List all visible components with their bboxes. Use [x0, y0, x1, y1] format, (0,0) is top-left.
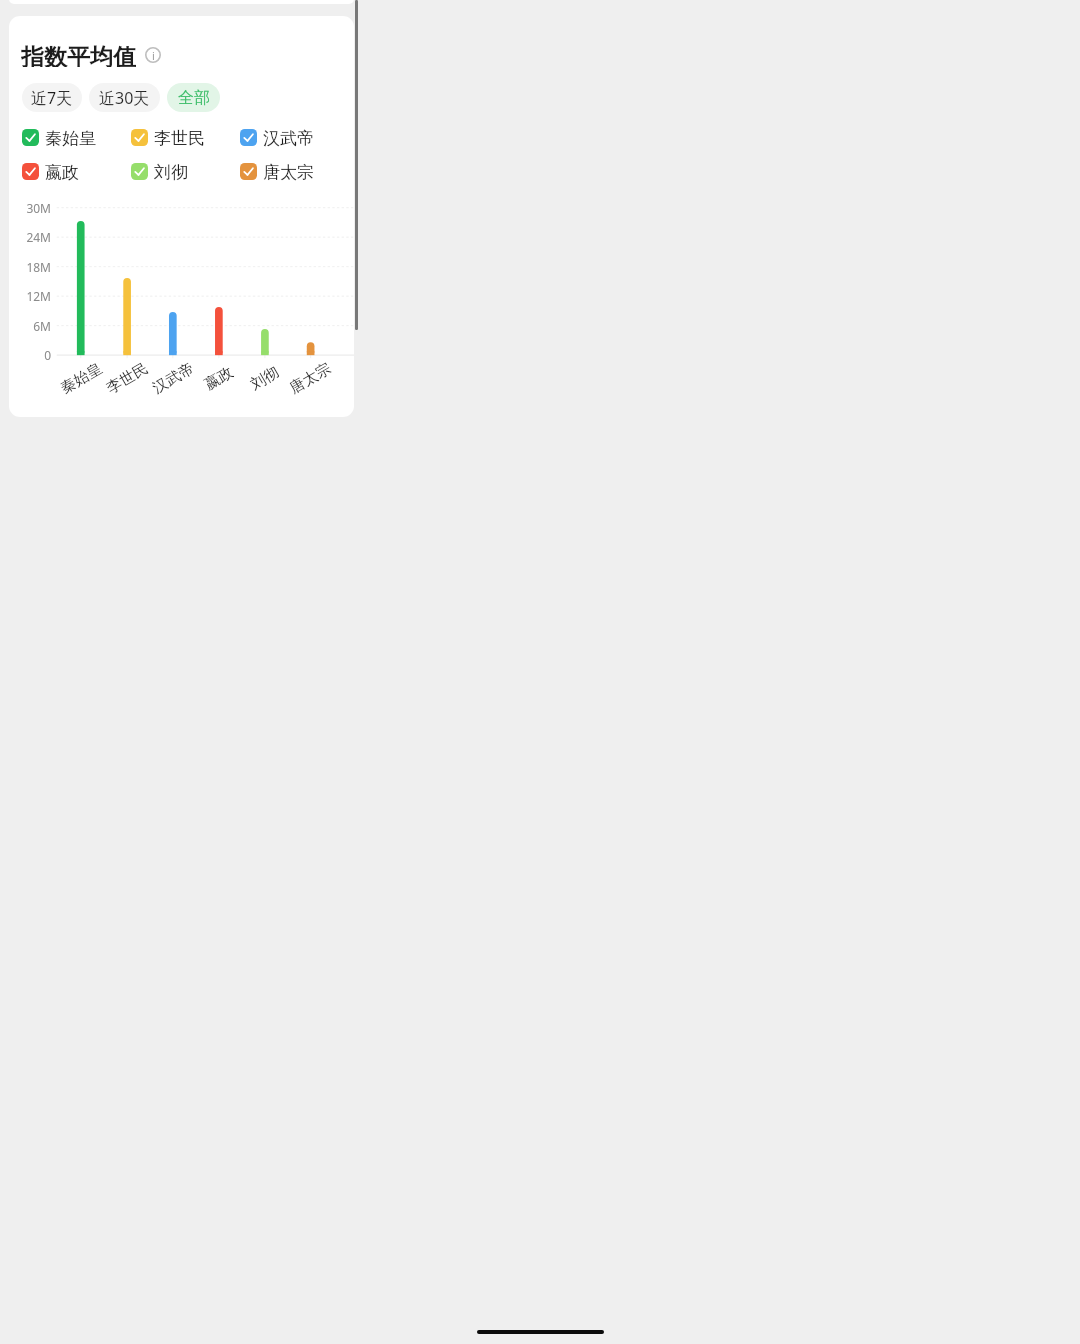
staticText: 唐太宗	[286, 359, 335, 398]
staticText: 6M	[33, 318, 51, 334]
staticText: 秦始皇	[57, 359, 106, 398]
staticText: 李世民	[103, 359, 152, 398]
staticText: 18M	[26, 259, 51, 275]
button[interactable]: 李世民	[131, 128, 240, 147]
button[interactable]: 近7天	[22, 83, 82, 112]
button[interactable]: 唐太宗	[240, 162, 349, 181]
staticText: 近30天	[99, 87, 150, 109]
staticText: 汉武帝	[149, 359, 198, 398]
staticText: 近7天	[31, 87, 73, 109]
button[interactable]: 嬴政	[22, 162, 131, 181]
staticText: i	[152, 48, 155, 63]
staticText: 12M	[26, 288, 51, 304]
staticText: 嬴政	[45, 162, 79, 181]
button[interactable]: 近30天	[89, 83, 160, 112]
staticText: 秦始皇	[45, 128, 96, 147]
staticText: 全部	[178, 88, 210, 108]
staticText: 汉武帝	[263, 128, 314, 147]
staticText: 刘彻	[247, 363, 283, 394]
button[interactable]: 秦始皇	[22, 128, 131, 147]
button[interactable]: 说明	[145, 47, 161, 63]
staticText: 李世民	[154, 128, 205, 147]
staticText: 刘彻	[154, 162, 188, 181]
button[interactable]: 汉武帝	[240, 128, 349, 147]
staticText: 唐太宗	[263, 162, 314, 181]
staticText: 嬴政	[201, 363, 237, 394]
staticText: 指数平均值	[21, 43, 136, 67]
button[interactable]: 刘彻	[131, 162, 240, 181]
staticText: 24M	[26, 229, 51, 245]
staticText: 30M	[26, 200, 51, 216]
staticText: 0	[44, 347, 51, 363]
button[interactable]: 全部	[167, 83, 220, 112]
